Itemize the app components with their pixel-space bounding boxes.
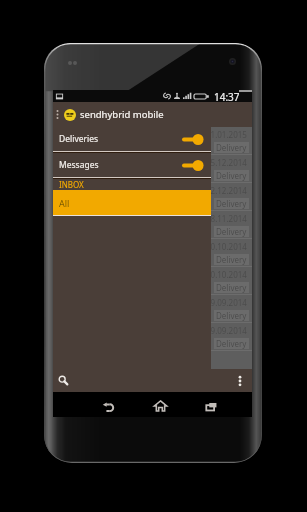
staticText: 15.12.2014	[206, 157, 247, 168]
staticText: 14:37	[214, 90, 240, 102]
staticText: Delivery	[216, 170, 247, 181]
button[interactable]: 01.01.2015	[53, 127, 252, 154]
staticText: Delivery	[216, 142, 247, 153]
button[interactable]: Deliveries	[53, 127, 211, 151]
staticText: Delivery	[216, 282, 247, 293]
staticText: Delivery	[216, 338, 247, 349]
button[interactable]: More options	[231, 369, 249, 392]
staticText: 09.09.2014	[206, 325, 247, 336]
staticText: Delivery	[216, 254, 247, 265]
staticText: 20.10.2014	[206, 241, 247, 252]
staticText: Deliveries	[59, 133, 99, 145]
staticText: sendhybrid mobile	[80, 108, 164, 121]
button[interactable]: Back	[90, 395, 126, 417]
button[interactable]: Search	[53, 369, 73, 392]
button[interactable]: 15.12.2014	[53, 155, 252, 182]
button[interactable]: All	[53, 190, 211, 215]
staticText: 10.10.2014	[206, 269, 247, 280]
button[interactable]: 20.10.2014	[53, 239, 252, 266]
staticText: Delivery	[216, 198, 247, 209]
button[interactable]: Recent apps	[193, 395, 229, 417]
staticText: Delivery	[216, 226, 247, 237]
button[interactable]: 09.09.2014	[53, 323, 252, 350]
button[interactable]: 12.12.2014	[53, 183, 252, 210]
staticText: 29.09.2014	[206, 297, 247, 308]
staticText: INBOX	[59, 179, 84, 190]
staticText: 28.11.2014	[206, 213, 247, 224]
button[interactable]: 29.09.2014	[53, 295, 252, 322]
staticText: 12.12.2014	[206, 185, 247, 196]
button[interactable]: Open navigation drawer	[53, 102, 62, 127]
button[interactable]: Messages	[53, 153, 211, 177]
button[interactable]: 28.11.2014	[53, 211, 252, 238]
staticText: 01.01.2015	[206, 129, 247, 140]
button[interactable]: Home	[142, 395, 178, 417]
staticText: Messages	[59, 159, 99, 171]
staticText: Delivery	[216, 310, 247, 321]
button[interactable]: 10.10.2014	[53, 267, 252, 294]
staticText: All	[59, 197, 70, 209]
